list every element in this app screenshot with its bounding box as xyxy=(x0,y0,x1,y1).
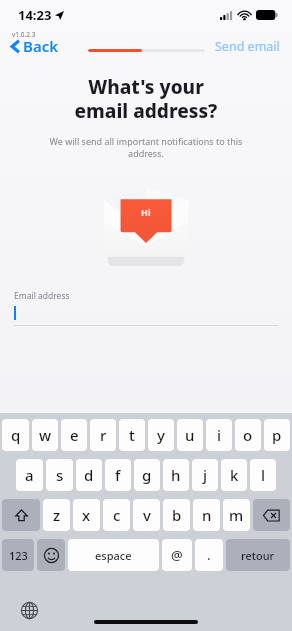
staticText: espace xyxy=(95,548,132,563)
staticText: . xyxy=(207,546,211,564)
staticText: e xyxy=(70,425,79,445)
button[interactable]: d xyxy=(76,459,102,491)
button[interactable]: g xyxy=(134,459,160,491)
staticText: s xyxy=(56,465,64,485)
button[interactable]: Back xyxy=(8,34,62,58)
staticText: p xyxy=(272,425,282,445)
staticText: c xyxy=(113,505,121,525)
button[interactable]: k xyxy=(221,459,247,491)
button[interactable]: w xyxy=(32,419,58,451)
button[interactable]: n xyxy=(193,499,220,531)
button[interactable]: c xyxy=(103,499,130,531)
staticText: x xyxy=(82,505,91,525)
staticText: @ xyxy=(171,546,183,564)
staticText: a xyxy=(25,465,34,485)
staticText: 123 xyxy=(9,548,28,563)
button[interactable]: Change keyboard language xyxy=(18,599,40,621)
button[interactable]: 123 xyxy=(2,539,34,571)
button[interactable]: x xyxy=(73,499,100,531)
staticText: z xyxy=(53,505,61,525)
button[interactable]: t xyxy=(119,419,145,451)
staticText: n xyxy=(202,505,212,525)
staticText: Hi xyxy=(141,206,151,218)
staticText: v xyxy=(143,505,151,525)
staticText: retour xyxy=(241,548,275,563)
button[interactable]: q xyxy=(2,419,29,451)
button[interactable]: e xyxy=(61,419,87,451)
button[interactable]: b xyxy=(163,499,190,531)
button[interactable]: h xyxy=(163,459,189,491)
button[interactable]: z xyxy=(43,499,70,531)
staticText: Back xyxy=(23,36,59,56)
button[interactable]: Shift xyxy=(2,499,40,531)
button[interactable]: o xyxy=(235,419,261,451)
staticText: w xyxy=(39,425,52,445)
staticText: m xyxy=(229,505,244,525)
button[interactable]: Backspace xyxy=(253,499,290,531)
button[interactable]: y xyxy=(148,419,174,451)
button[interactable]: espace xyxy=(68,539,159,571)
staticText: r xyxy=(100,425,107,445)
button[interactable]: i xyxy=(206,419,232,451)
button[interactable]: r xyxy=(90,419,116,451)
staticText: h xyxy=(171,465,181,485)
staticText: d xyxy=(84,465,94,485)
button[interactable]: . xyxy=(195,539,223,571)
staticText: u xyxy=(185,425,195,445)
staticText: 14:23 xyxy=(18,6,52,24)
button[interactable]: retour xyxy=(226,539,290,571)
staticText: b xyxy=(172,505,182,525)
staticText: g xyxy=(142,465,152,485)
button[interactable]: a xyxy=(16,459,43,491)
button[interactable]: Email address xyxy=(14,290,278,326)
staticText: f xyxy=(115,465,121,485)
staticText: t xyxy=(129,425,135,445)
staticText: i xyxy=(217,425,222,445)
button[interactable]: u xyxy=(177,419,203,451)
button[interactable]: p xyxy=(264,419,290,451)
staticText: l xyxy=(261,465,266,485)
staticText: We will send all important notifications… xyxy=(24,135,268,160)
button[interactable]: Emoji xyxy=(37,539,65,571)
staticText: Send email xyxy=(215,38,280,55)
staticText: q xyxy=(11,425,21,445)
button[interactable]: s xyxy=(46,459,73,491)
staticText: j xyxy=(203,465,208,485)
staticText: v1.0.2.3 xyxy=(12,30,36,39)
staticText: k xyxy=(230,465,239,485)
button[interactable]: Send email xyxy=(211,36,284,57)
staticText: What's your email address? xyxy=(20,74,272,123)
button[interactable]: v xyxy=(133,499,160,531)
button[interactable]: j xyxy=(192,459,218,491)
staticText: y xyxy=(157,425,165,445)
button[interactable]: f xyxy=(105,459,131,491)
button[interactable]: @ xyxy=(162,539,192,571)
button[interactable]: l xyxy=(250,459,276,491)
staticText: Email address xyxy=(14,290,70,302)
button[interactable]: m xyxy=(223,499,250,531)
staticText: o xyxy=(243,425,253,445)
